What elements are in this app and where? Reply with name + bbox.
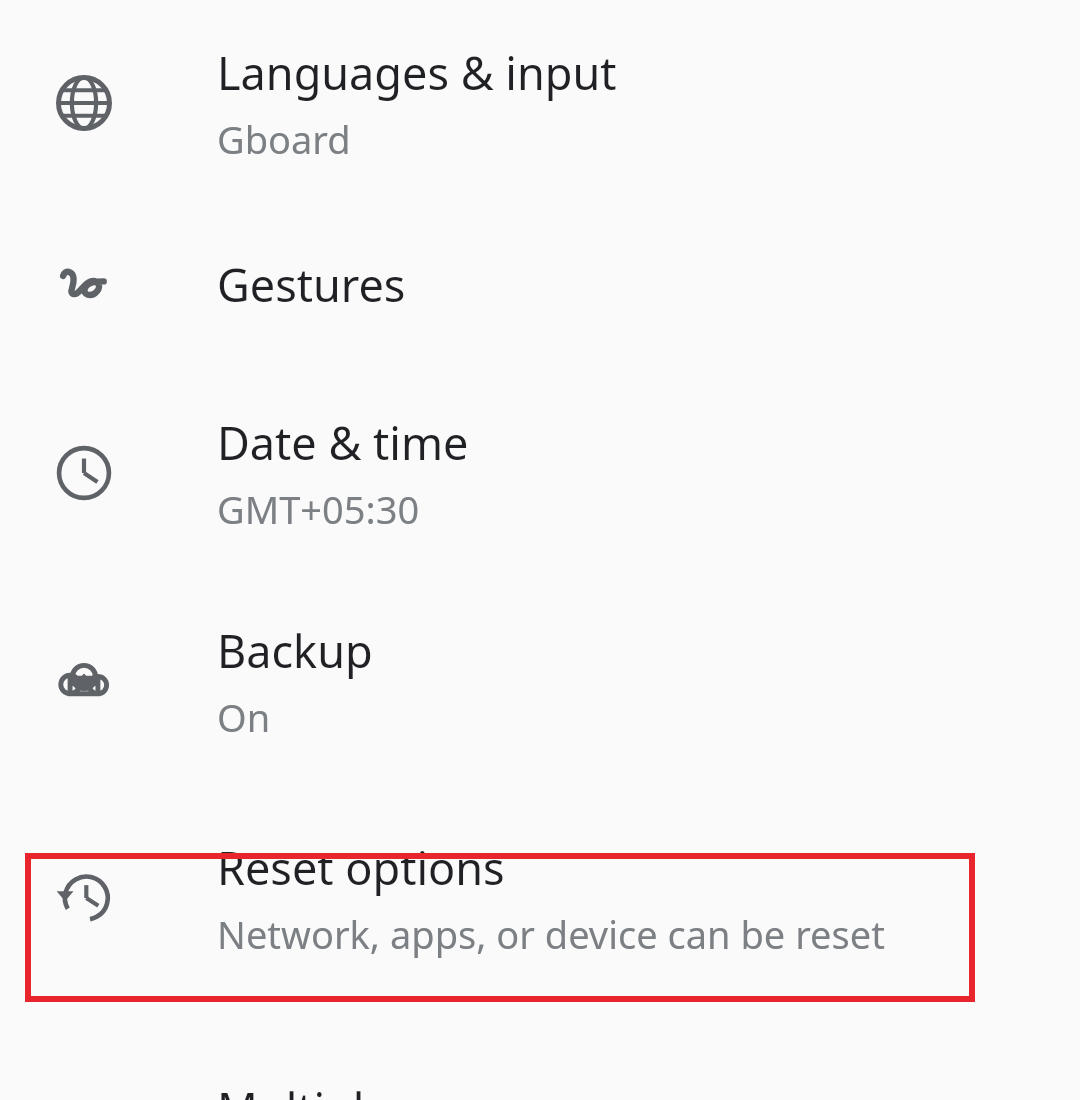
staticText: Date & time	[217, 412, 469, 473]
staticText: Gboard	[217, 113, 351, 165]
other: Backup	[0, 572, 168, 790]
button[interactable]: Date and time	[0, 374, 1080, 572]
button[interactable]: Languages and input	[0, 12, 1080, 194]
staticText: Backup	[217, 620, 373, 681]
staticText: Network, apps, or device can be reset	[217, 908, 885, 960]
staticText: Languages & input	[217, 42, 617, 103]
other: Languages and input	[0, 12, 168, 194]
staticText: Gestures	[217, 254, 406, 315]
other: Date and time	[0, 374, 168, 572]
staticText: Reset options	[217, 837, 505, 898]
button[interactable]: Backup	[0, 572, 1080, 790]
button[interactable]: Gestures	[0, 194, 1080, 374]
staticText: GMT+05:30	[217, 483, 420, 535]
staticText: On	[217, 691, 271, 743]
staticText: Multiple users	[217, 1078, 517, 1100]
other: Reset options	[0, 790, 168, 1006]
other: Gestures	[0, 194, 168, 374]
button[interactable]: Multiple users	[0, 1006, 1080, 1100]
button[interactable]: Reset options	[0, 790, 1080, 1006]
